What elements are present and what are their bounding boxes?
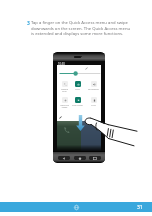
staticText: CAST bbox=[91, 104, 96, 107]
button[interactable]: BLUETOOTH bbox=[88, 81, 99, 91]
staticText: DATA SAVER bbox=[72, 104, 83, 107]
button[interactable]: Recent apps bbox=[89, 156, 101, 160]
staticText: 31 bbox=[137, 204, 143, 211]
staticText: BLUETOOTH bbox=[88, 88, 99, 91]
button[interactable]: MOBILE DATA bbox=[59, 81, 70, 92]
button[interactable]: Home bbox=[74, 156, 86, 160]
staticText: AIRPLANE MODE bbox=[59, 104, 70, 108]
button[interactable]: CAST bbox=[88, 97, 99, 107]
staticText: 10:30 bbox=[58, 62, 65, 66]
button[interactable]: AIRPLANE MODE bbox=[59, 97, 70, 108]
staticText: MOBILE DATA bbox=[59, 88, 70, 92]
button[interactable]: WI-FI bbox=[72, 81, 83, 91]
button[interactable]: Edit quick settings bbox=[59, 116, 62, 119]
staticText: WI-FI bbox=[75, 88, 80, 91]
staticText: Tap a finger on the Quick Access menu an… bbox=[31, 20, 134, 36]
button[interactable]: Back bbox=[58, 156, 70, 160]
button[interactable]: Edit bbox=[85, 67, 88, 70]
staticText: 3 bbox=[27, 20, 30, 27]
button[interactable]: DATA SAVER bbox=[72, 97, 83, 107]
